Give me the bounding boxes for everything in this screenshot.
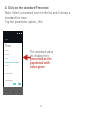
- staticText: Dur: [5, 49, 9, 52]
- staticText: Number: [5, 79, 13, 82]
- button[interactable]: App bar: [3, 35, 23, 43]
- staticText: Note: Select a standard item on the list…: [5, 11, 71, 15]
- staticText: 4. Click on the standard Presentat: [5, 6, 49, 10]
- staticText: presented as the populated with value gi…: [30, 57, 52, 69]
- staticText: Cost: [5, 53, 10, 56]
- staticText: Tap the parameter option, click: [5, 20, 43, 24]
- staticText: Size: [5, 64, 9, 67]
- staticText: The standard value list display here: [30, 50, 54, 57]
- staticText: standard list view.: [5, 16, 27, 20]
- staticText: No: [5, 57, 8, 60]
- staticText: Time: [5, 44, 11, 48]
- staticText: Amount: [5, 72, 13, 75]
